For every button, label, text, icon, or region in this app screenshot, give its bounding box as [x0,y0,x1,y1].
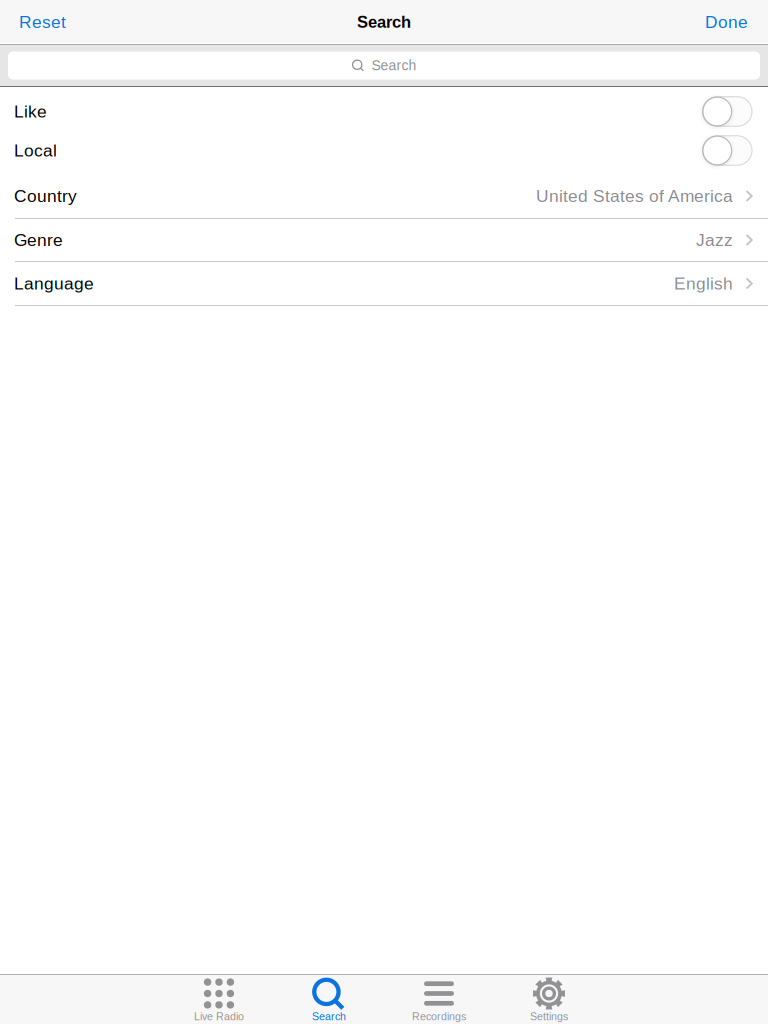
staticText: English [674,274,733,293]
button[interactable]: Settings [494,974,604,1024]
button[interactable]: Done [693,0,768,44]
staticText: Live Radio [194,1010,244,1022]
button[interactable]: Live Radio [164,974,274,1024]
staticText: Recordings [412,1010,466,1022]
staticText: Reset [19,12,66,32]
staticText: Search [312,1010,346,1022]
staticText: Country [14,186,77,206]
staticText: Search [371,58,416,73]
button[interactable]: Country [0,174,768,219]
button[interactable]: Recordings [384,974,494,1024]
staticText: Genre [14,230,63,250]
button[interactable]: Local [0,131,768,170]
staticText: Local [14,141,57,160]
staticText: United States of America [536,186,733,206]
button[interactable]: Search [274,974,384,1024]
button[interactable]: Genre [0,219,768,262]
staticText: Language [14,274,94,293]
staticText: Settings [530,1010,568,1022]
button[interactable]: Language [0,262,768,306]
button[interactable]: Like [0,92,768,131]
staticText: Jazz [696,230,733,250]
staticText: Like [14,102,47,121]
staticText: Search [357,13,411,31]
button[interactable]: Reset [0,0,78,44]
staticText: Done [705,12,748,32]
